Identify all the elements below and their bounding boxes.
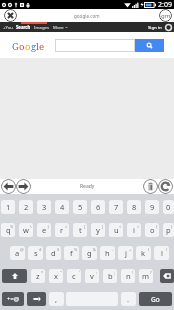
button[interactable]: 2	[19, 200, 33, 214]
button[interactable]: Go	[139, 292, 172, 306]
button[interactable]: Settings	[165, 24, 172, 31]
button[interactable]: +You	[3, 24, 13, 30]
staticText: )	[166, 247, 168, 252]
button[interactable]: 9	[145, 200, 159, 214]
button[interactable]: 0	[163, 200, 174, 214]
button[interactable]: Search	[16, 24, 31, 30]
button[interactable]: Backspace	[160, 269, 174, 283]
button[interactable]: s	[28, 246, 43, 260]
button[interactable]: g	[82, 246, 97, 260]
button[interactable]: Stop loading	[4, 9, 17, 22]
staticText: l	[161, 248, 163, 258]
staticText: k	[141, 248, 146, 258]
staticText: e	[42, 225, 47, 235]
button[interactable]: +=@	[2, 292, 24, 306]
button[interactable]: Refresh	[158, 179, 173, 194]
button[interactable]: o	[145, 223, 159, 237]
staticText: [	[84, 224, 86, 229]
staticText: e	[39, 40, 44, 53]
button[interactable]: Tabs	[143, 179, 158, 194]
button[interactable]: e	[37, 223, 51, 237]
staticText: $	[57, 247, 60, 252]
staticText: \	[30, 224, 32, 229]
staticText: 3	[42, 202, 47, 212]
staticText: z	[36, 271, 40, 281]
button[interactable]: Forward	[16, 179, 31, 194]
button[interactable]: b	[103, 269, 117, 283]
staticText: s	[34, 248, 38, 258]
button[interactable]: Tab	[27, 292, 46, 306]
button[interactable]: j	[118, 246, 133, 260]
staticText: 5	[78, 202, 83, 212]
button[interactable]: 6	[91, 200, 105, 214]
staticText: a	[15, 248, 20, 258]
button[interactable]: Back	[1, 179, 16, 194]
staticText: o	[19, 40, 25, 53]
staticText: google.com	[74, 13, 100, 19]
staticText: 8	[132, 202, 137, 212]
staticText: "	[60, 270, 62, 275]
button[interactable]: 8	[127, 200, 141, 214]
staticText: 6	[96, 202, 101, 212]
button[interactable]: d	[46, 246, 61, 260]
button[interactable]: u	[109, 223, 123, 237]
button[interactable]: Search	[135, 39, 164, 52]
staticText: x	[54, 271, 58, 281]
button[interactable]: More	[53, 24, 64, 30]
button[interactable]: y	[91, 223, 105, 237]
staticText: u	[114, 225, 119, 235]
staticText: |	[47, 224, 50, 229]
button[interactable]: t	[73, 223, 87, 237]
button[interactable]: ,	[49, 292, 64, 306]
button[interactable]: n	[121, 269, 135, 283]
button[interactable]: r	[55, 223, 69, 237]
button[interactable]: k	[136, 246, 151, 260]
button[interactable]: 1	[1, 200, 15, 214]
button[interactable]: l	[154, 246, 169, 260]
staticText: d	[51, 248, 56, 258]
staticText: b	[108, 271, 113, 281]
button[interactable]: c	[67, 269, 81, 283]
button[interactable]: 3	[37, 200, 51, 214]
button[interactable]: i	[127, 223, 141, 237]
staticText: ,	[55, 294, 58, 304]
button[interactable]: 4	[55, 200, 69, 214]
button[interactable]: 5	[73, 200, 87, 214]
button[interactable]: h	[100, 246, 115, 260]
staticText: j	[125, 248, 127, 258]
staticText: }	[171, 224, 173, 229]
staticText: 7	[114, 202, 119, 212]
staticText: ;	[114, 270, 116, 275]
button[interactable]: a	[10, 246, 25, 260]
staticText: +=@	[7, 295, 20, 303]
staticText: Ready	[80, 183, 95, 190]
button[interactable]: f	[64, 246, 79, 260]
staticText: o	[25, 40, 31, 53]
staticText: 9	[150, 202, 155, 212]
button[interactable]: v	[85, 269, 99, 283]
button[interactable]: z	[31, 269, 45, 283]
button[interactable]: q	[1, 223, 15, 237]
button[interactable]: x	[49, 269, 63, 283]
staticText: 2	[24, 202, 29, 212]
button[interactable]: Sign in	[148, 24, 162, 30]
staticText: v	[90, 271, 94, 281]
staticText: :	[96, 270, 98, 275]
button[interactable]: m	[139, 269, 153, 283]
button[interactable]: Tabs	[159, 9, 172, 22]
button[interactable]: w	[19, 223, 33, 237]
button[interactable]: Search field	[55, 39, 135, 52]
staticText: o	[150, 225, 155, 235]
button[interactable]: .	[121, 292, 136, 306]
button[interactable]: p	[163, 223, 174, 237]
staticText: G	[12, 40, 19, 53]
button[interactable]: 7	[109, 200, 123, 214]
staticText: 4	[60, 202, 65, 212]
staticText: *	[41, 270, 44, 275]
staticText: +	[129, 247, 132, 252]
staticText: &	[93, 247, 96, 252]
button[interactable]: Images	[34, 24, 50, 30]
staticText: .	[127, 294, 130, 304]
button[interactable]: Shift	[2, 269, 27, 283]
